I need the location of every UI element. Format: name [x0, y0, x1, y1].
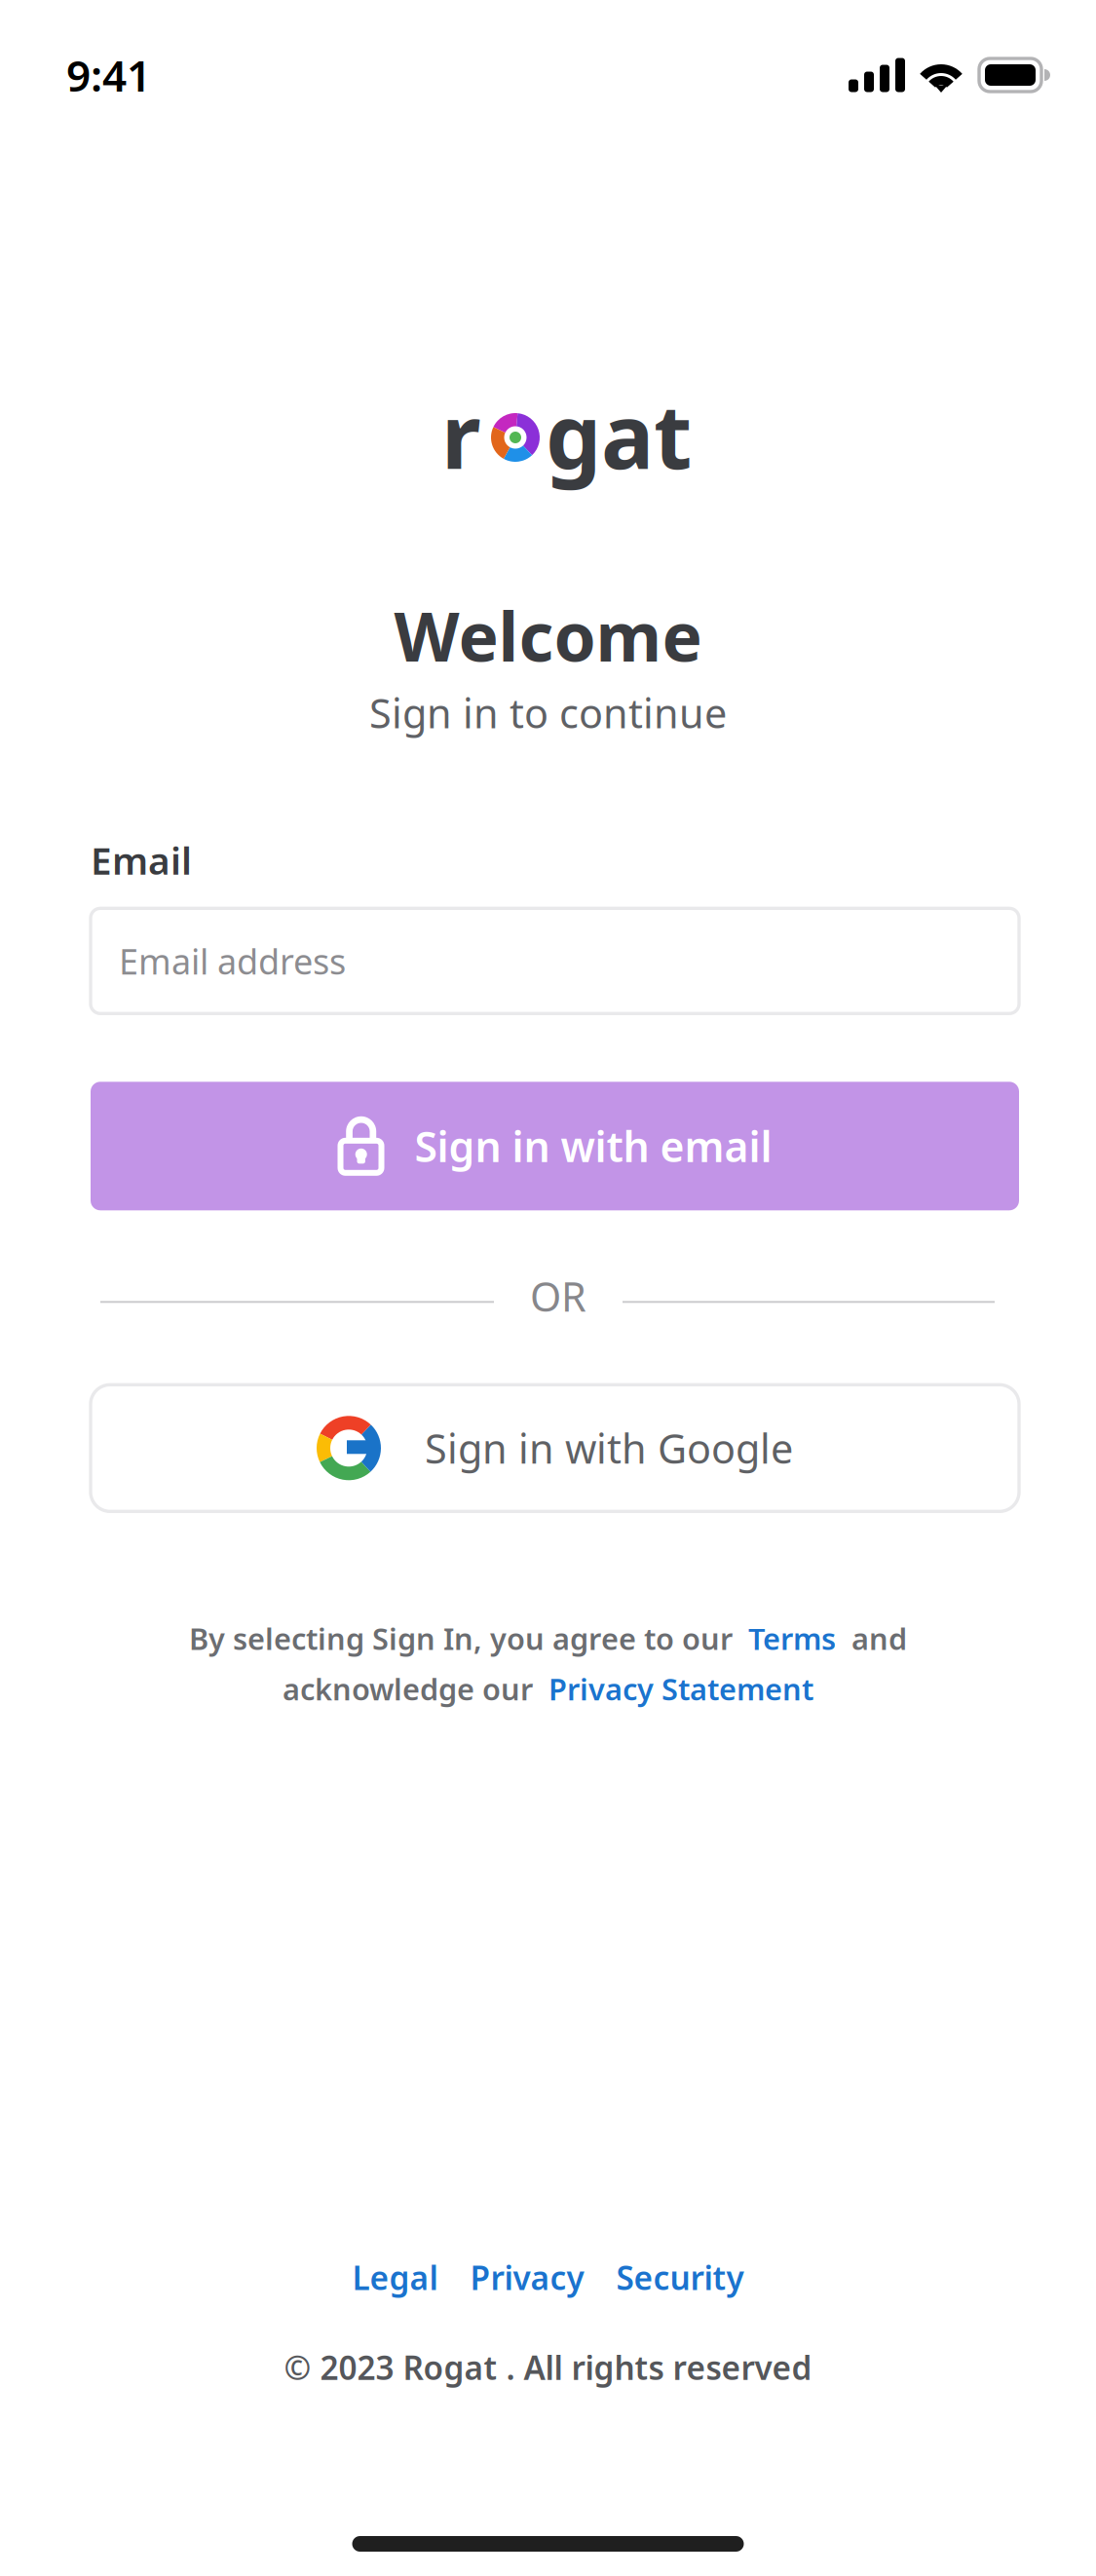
button[interactable]: Terms — [748, 1619, 836, 1658]
button[interactable]: Privacy — [470, 2256, 584, 2299]
button[interactable]: Legal — [352, 2256, 438, 2299]
staticText: Terms — [748, 1619, 836, 1658]
staticText: Sign in with email — [415, 1118, 772, 1174]
button[interactable]: Security — [616, 2256, 744, 2299]
staticText: Legal — [352, 2256, 438, 2299]
staticText: Welcome — [394, 590, 702, 680]
staticText: Security — [616, 2256, 744, 2299]
button[interactable]: Email address — [0, 908, 1096, 1014]
staticText: 9:41 — [66, 47, 151, 103]
staticText: r — [441, 376, 481, 493]
button[interactable]: Sign in with Google — [0, 1385, 1096, 1511]
staticText: and — [836, 1619, 907, 1658]
button[interactable]: Sign in with email — [0, 1082, 1096, 1210]
staticText: Privacy Statement — [548, 1669, 813, 1709]
staticText: Sign in with Google — [425, 1421, 793, 1475]
staticText: acknowledge our — [283, 1669, 548, 1709]
staticText: OR — [530, 1269, 586, 1323]
staticText: Sign in to continue — [369, 686, 727, 739]
button[interactable]: Privacy Statement — [548, 1669, 813, 1709]
staticText: By selecting Sign In, you agree to our — [189, 1619, 748, 1658]
staticText: gat — [546, 376, 692, 493]
staticText: Email — [91, 835, 192, 885]
staticText: © 2023 Rogat . All rights reserved — [284, 2346, 812, 2389]
staticText: Email address — [119, 938, 346, 984]
staticText: Privacy — [470, 2256, 584, 2299]
